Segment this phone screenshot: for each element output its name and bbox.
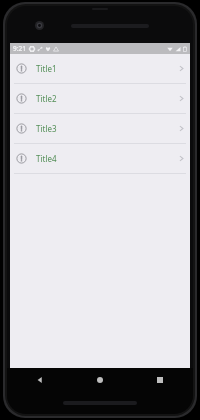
button[interactable]: Title3 xyxy=(10,114,190,143)
staticText: 9:21 xyxy=(13,44,26,53)
button[interactable]: Home xyxy=(70,368,130,392)
button[interactable]: Recent apps xyxy=(130,368,190,392)
button[interactable]: Title1 xyxy=(10,54,190,83)
button[interactable]: Title4 xyxy=(10,144,190,173)
staticText: Title1 xyxy=(36,63,179,74)
staticText: Title2 xyxy=(36,93,179,104)
staticText: Title3 xyxy=(36,123,179,134)
button[interactable]: Back xyxy=(10,368,70,392)
button[interactable]: Title2 xyxy=(10,84,190,113)
staticText: Title4 xyxy=(36,153,179,164)
